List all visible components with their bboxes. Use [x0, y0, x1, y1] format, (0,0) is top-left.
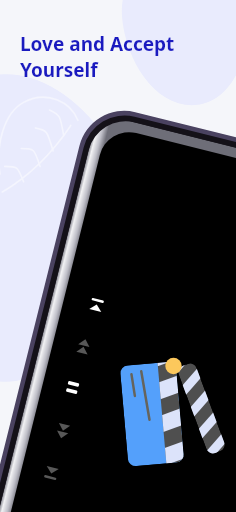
staticText: Love and Accept	[20, 31, 175, 57]
staticText: Yourself	[20, 57, 98, 83]
